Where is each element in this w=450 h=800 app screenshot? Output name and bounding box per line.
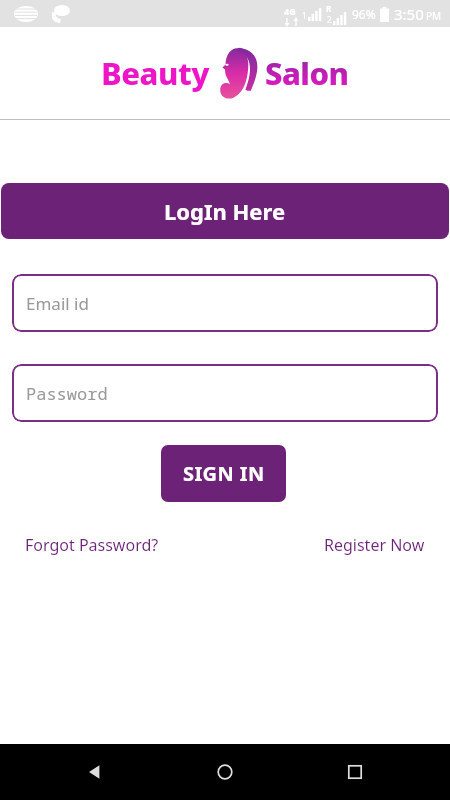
button[interactable]: Email id [12, 274, 438, 332]
button[interactable]: Password [12, 364, 438, 422]
staticText: 96% [352, 6, 376, 22]
button[interactable]: Recent apps [320, 744, 390, 800]
staticText: Password [26, 382, 108, 405]
staticText: Register Now [324, 534, 425, 556]
staticText: Email id [26, 292, 89, 315]
staticText: LogIn Here [164, 196, 286, 226]
staticText: SIGN IN [183, 460, 265, 487]
button[interactable]: Back [60, 744, 130, 800]
button[interactable]: Register Now [324, 534, 425, 556]
staticText: 1 [302, 10, 307, 21]
staticText: Salon [265, 52, 349, 94]
staticText: PM [426, 9, 442, 23]
button[interactable]: SIGN IN [161, 445, 286, 502]
button[interactable]: Forgot Password? [25, 534, 159, 556]
button[interactable]: Home [190, 744, 260, 800]
staticText: 4G [284, 5, 296, 17]
staticText: 3:50 [394, 4, 424, 24]
button[interactable]: LogIn Here [1, 183, 449, 239]
staticText: 2 [327, 14, 332, 25]
staticText: Beauty [101, 52, 209, 94]
staticText: R [326, 3, 332, 14]
staticText: Forgot Password? [25, 534, 159, 556]
